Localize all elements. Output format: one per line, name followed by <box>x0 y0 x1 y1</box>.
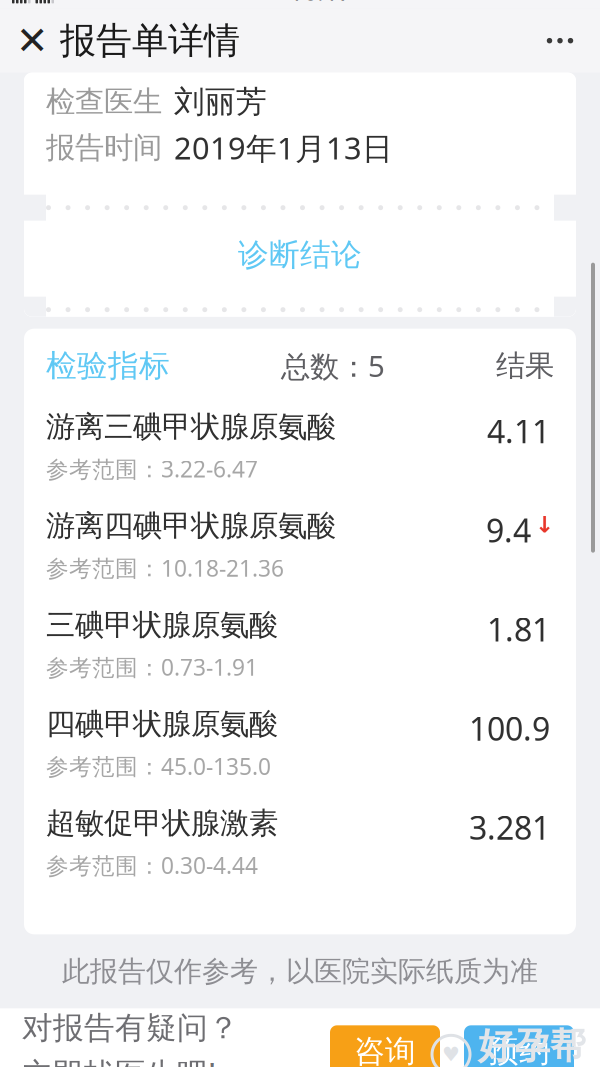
staticText: 1.81 <box>487 608 550 650</box>
staticText: 2019年1月13日 <box>174 127 393 168</box>
staticText: 检验指标 <box>46 347 170 384</box>
staticText: 100.9 <box>469 707 550 750</box>
button[interactable]: 预约 <box>464 1025 574 1067</box>
staticText: 对报告有疑问？ <box>22 1009 239 1047</box>
staticText: ↓ <box>535 512 554 537</box>
button[interactable]: 咨询 <box>330 1025 440 1067</box>
staticText: 16:17 <box>289 0 352 7</box>
staticText: 4.11 <box>487 410 550 452</box>
staticText: 3.281 <box>469 806 550 849</box>
staticText: 总数：5 <box>281 346 385 385</box>
staticText: 参考范围：0.30-4.44 <box>46 850 258 880</box>
staticText: 咨询 <box>354 1032 416 1067</box>
staticText: ♥ <box>442 1043 460 1066</box>
staticText: 参考范围：10.18-21.36 <box>46 553 284 583</box>
staticText: 结果 <box>496 348 554 384</box>
staticText: 游离三碘甲状腺原氨酸 <box>46 409 336 445</box>
staticText: 参考范围：3.22-6.47 <box>46 454 258 484</box>
staticText: 预约 <box>488 1032 550 1067</box>
staticText: 报告时间 <box>46 130 162 166</box>
staticText: 立即找医生吧! <box>22 1053 216 1067</box>
staticText: 9.4 <box>486 509 531 551</box>
staticText: 参考范围：0.73-1.91 <box>46 652 258 682</box>
staticText: 刘丽芳 <box>174 83 267 120</box>
staticText: 报告单详情 <box>60 19 240 63</box>
staticText: 好孕帮 <box>478 1024 586 1067</box>
staticText: ✕ <box>16 19 48 63</box>
staticText: 参考范围：45.0-135.0 <box>46 751 271 781</box>
staticText: 四碘甲状腺原氨酸 <box>46 706 278 742</box>
staticText: 检查医生 <box>46 84 162 120</box>
staticText: 此报告仅作参考，以医院实际纸质为准 <box>62 954 538 988</box>
staticText: 超敏促甲状腺激素 <box>46 805 278 841</box>
staticText: 三碘甲状腺原氨酸 <box>46 607 278 643</box>
staticText: 诊断结论 <box>238 236 362 273</box>
button[interactable]: 关闭 <box>4 11 60 71</box>
button[interactable]: 更多 <box>528 11 592 71</box>
staticText: 游离四碘甲状腺原氨酸 <box>46 508 336 544</box>
